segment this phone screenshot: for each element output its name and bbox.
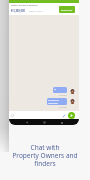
button[interactable]: Send [68, 112, 75, 119]
staticText: ₦ 3,250,000 [11, 9, 26, 13]
staticText: Is that still available? [48, 99, 59, 104]
button[interactable]: Home [43, 121, 46, 124]
button[interactable]: Is that still available? [47, 98, 67, 105]
button[interactable]: Back [25, 121, 28, 124]
staticText: 12:30 pm [59, 106, 67, 108]
staticText: March 14, 2021 [29, 10, 43, 13]
staticText: Hi [54, 88, 57, 91]
staticText: Book now [61, 8, 73, 11]
button[interactable]: Book now [59, 6, 75, 13]
button[interactable]: Hi [53, 87, 67, 93]
staticText: Chat with Property Owners and finders [12, 143, 78, 168]
staticText: 12:30 pm [59, 94, 67, 96]
button[interactable]: Edit message [62, 114, 66, 118]
staticText: Modern flat with 2 Bedroom [11, 4, 38, 7]
